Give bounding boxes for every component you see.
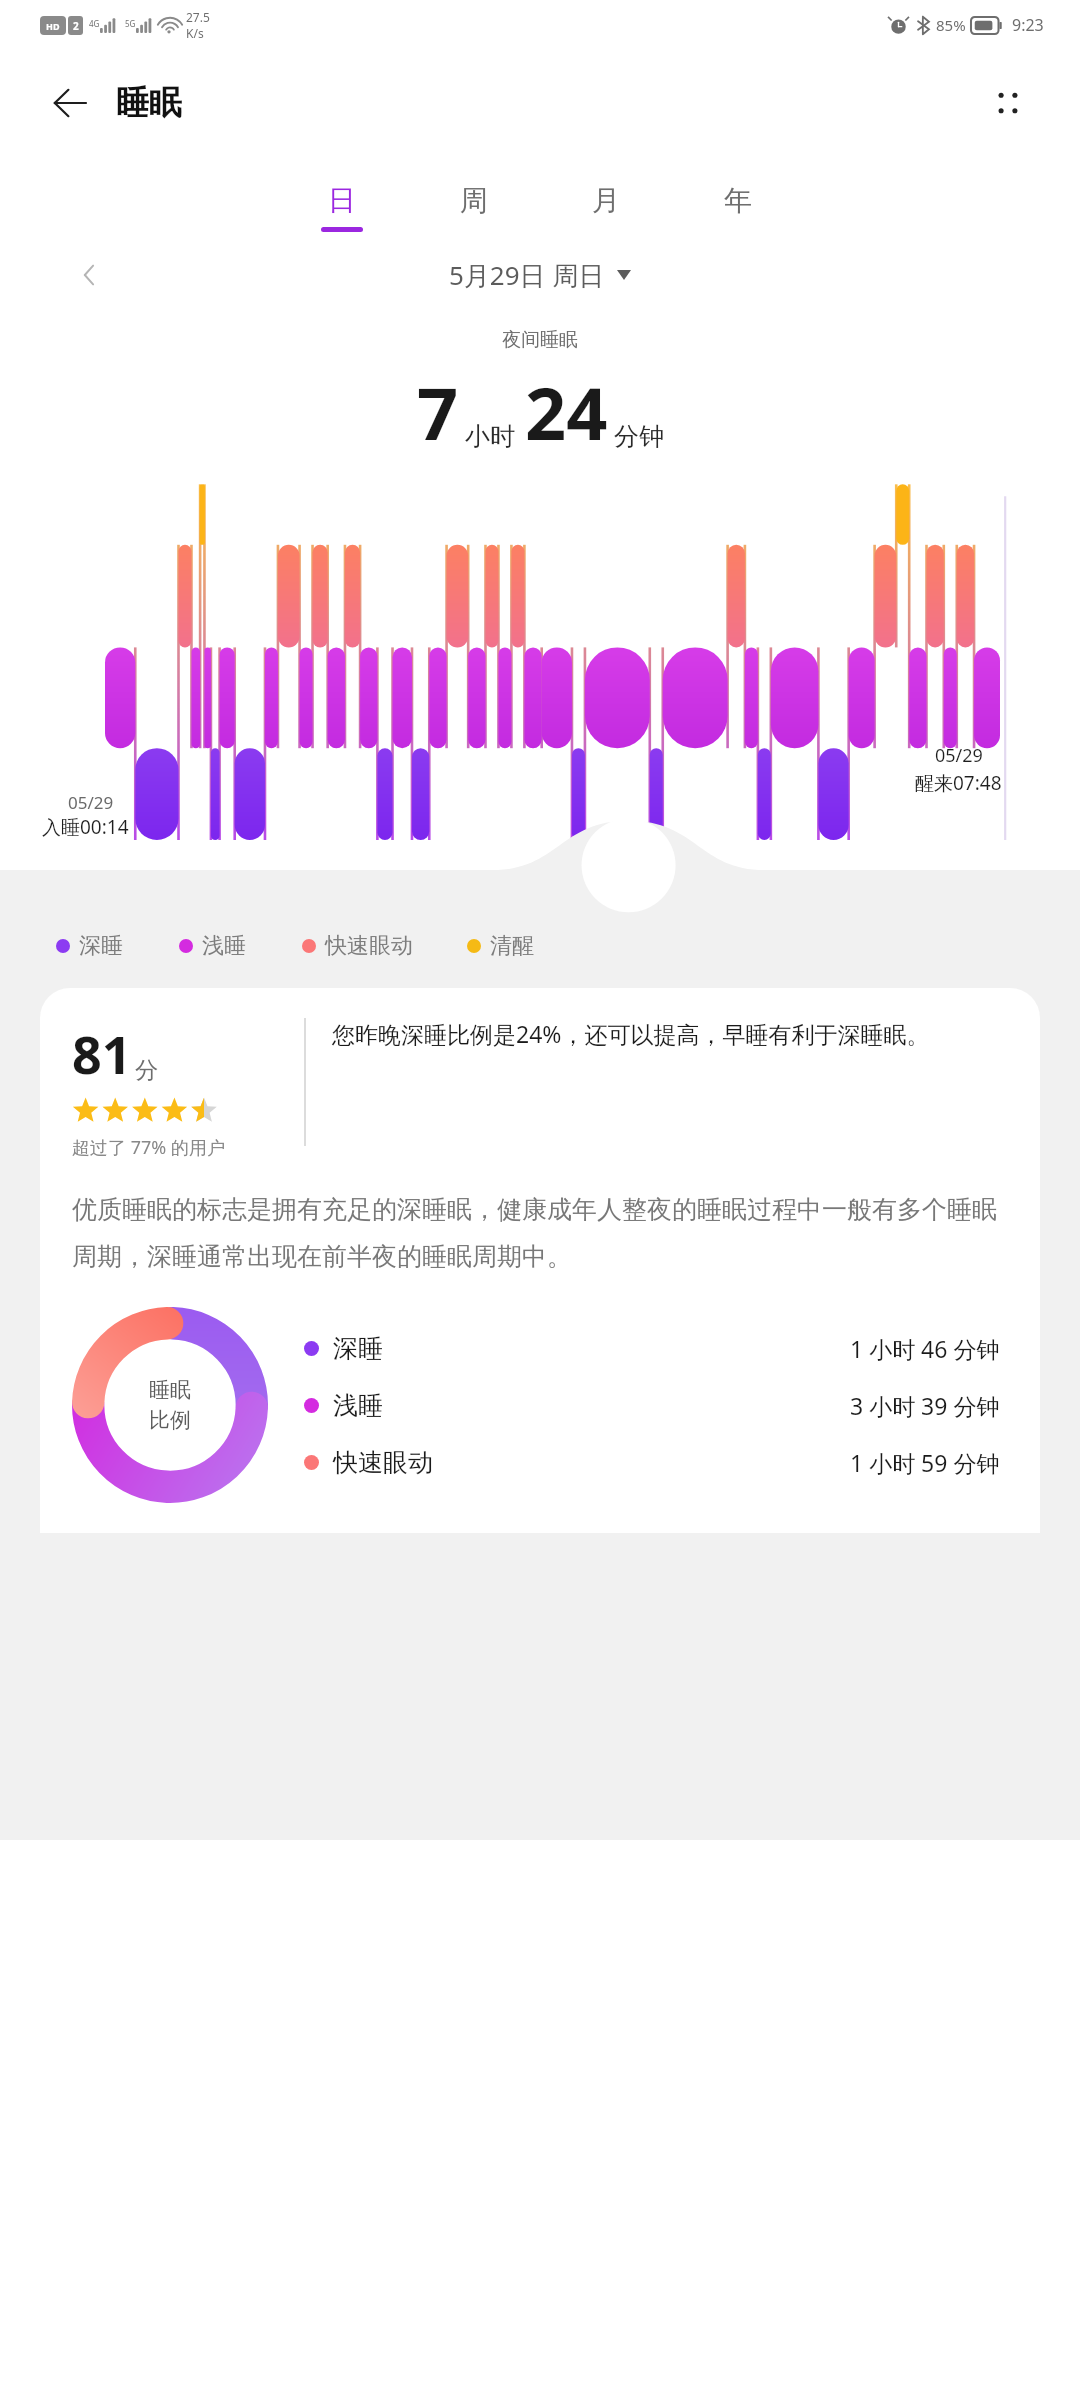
button[interactable]: 周 bbox=[408, 179, 540, 236]
staticText: 27.5 bbox=[186, 9, 210, 25]
button[interactable]: 年 bbox=[672, 179, 804, 236]
staticText: 5月29日 周日 bbox=[449, 257, 605, 293]
staticText: 分钟 bbox=[614, 421, 664, 452]
staticText: 睡眠 bbox=[149, 1377, 191, 1403]
staticText: 分 bbox=[135, 1056, 158, 1085]
staticText: 5G bbox=[125, 18, 136, 29]
staticText: 快速眼动 bbox=[333, 1447, 433, 1478]
button[interactable]: Previous day bbox=[64, 249, 116, 301]
staticText: 浅睡 bbox=[202, 932, 246, 960]
staticText: 7 bbox=[417, 363, 459, 461]
staticText: 日 bbox=[328, 183, 356, 218]
button[interactable]: 快速眼动 bbox=[304, 1447, 1008, 1478]
staticText: 4G bbox=[89, 18, 100, 29]
button[interactable]: 81 bbox=[40, 988, 1040, 1533]
staticText: 9:23 bbox=[1012, 14, 1044, 36]
staticText: 年 bbox=[724, 183, 752, 218]
staticText: 1 小时 46 分钟 bbox=[850, 1333, 1000, 1364]
staticText: K/s bbox=[186, 25, 204, 41]
staticText: 81 bbox=[72, 1018, 132, 1089]
button[interactable]: 深睡 bbox=[304, 1333, 1008, 1364]
button[interactable]: 浅睡 bbox=[304, 1390, 1008, 1421]
staticText: 85% bbox=[936, 15, 966, 35]
staticText: 05/29 bbox=[68, 791, 114, 814]
staticText: 周 bbox=[460, 183, 488, 218]
staticText: 2 bbox=[73, 19, 79, 33]
staticText: 清醒 bbox=[490, 932, 534, 960]
staticText: 夜间睡眠 bbox=[0, 328, 1080, 352]
staticText: 24 bbox=[525, 363, 608, 461]
button[interactable]: 月 bbox=[540, 179, 672, 236]
staticText: 快速眼动 bbox=[325, 932, 413, 960]
staticText: 浅睡 bbox=[333, 1390, 383, 1421]
staticText: 05/29 bbox=[935, 743, 983, 768]
button[interactable]: Back bbox=[42, 75, 98, 131]
button[interactable]: 深睡 bbox=[56, 932, 123, 960]
staticText: 月 bbox=[592, 183, 620, 218]
staticText: HD bbox=[46, 20, 60, 32]
button[interactable]: 浅睡 bbox=[179, 932, 246, 960]
staticText: 深睡 bbox=[333, 1333, 383, 1364]
staticText: 优质睡眠的标志是拥有充足的深睡眠，健康成年人整夜的睡眠过程中一般有多个睡眠周期，… bbox=[72, 1194, 1008, 1273]
staticText: 睡眠 bbox=[116, 82, 182, 124]
staticText: 醒来07:48 bbox=[915, 770, 1002, 796]
staticText: 入睡00:14 bbox=[42, 814, 129, 840]
button[interactable]: 清醒 bbox=[467, 932, 534, 960]
staticText: 深睡 bbox=[79, 932, 123, 960]
staticText: 您昨晚深睡比例是24%，还可以提高，早睡有利于深睡眠。 bbox=[332, 1018, 1008, 1049]
button[interactable]: More options bbox=[978, 73, 1038, 133]
staticText: 1 小时 59 分钟 bbox=[850, 1447, 1000, 1478]
staticText: 3 小时 39 分钟 bbox=[850, 1390, 1000, 1421]
button[interactable]: 快速眼动 bbox=[302, 932, 413, 960]
button[interactable]: 5月29日 周日 bbox=[449, 257, 631, 293]
staticText: 超过了 77% 的用户 bbox=[72, 1135, 225, 1160]
staticText: 比例 bbox=[149, 1407, 191, 1433]
button[interactable]: 日 bbox=[276, 179, 408, 236]
staticText: 小时 bbox=[465, 421, 515, 452]
